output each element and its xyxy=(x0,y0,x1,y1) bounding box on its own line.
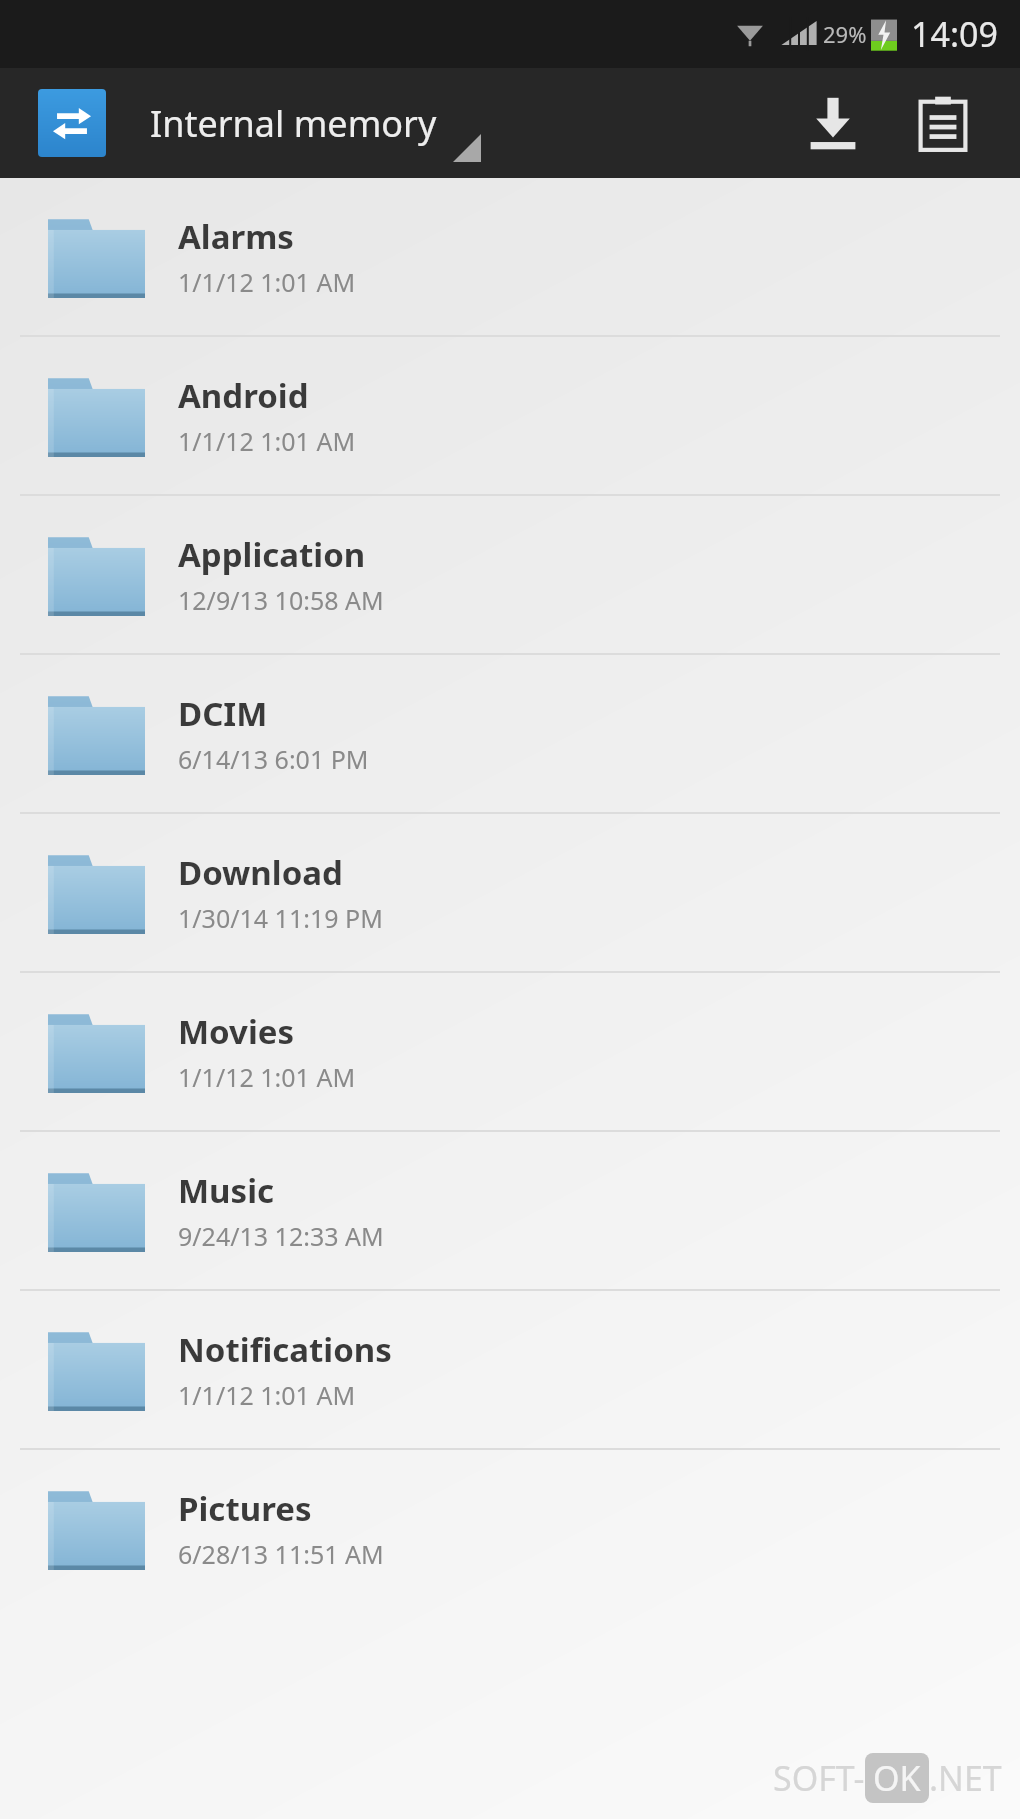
staticText: 14:09 xyxy=(911,11,998,57)
button[interactable]: Clipboard xyxy=(888,68,998,178)
staticText: 9/24/13 12:33 AM xyxy=(178,1219,384,1253)
staticText: 6/28/13 11:51 AM xyxy=(178,1537,384,1571)
button[interactable]: Application xyxy=(0,496,1020,653)
staticText: OK xyxy=(873,1755,921,1801)
button[interactable]: Movies xyxy=(0,973,1020,1130)
staticText: 1/1/12 1:01 AM xyxy=(178,424,356,458)
staticText: DCIM xyxy=(178,691,268,736)
button[interactable]: Download xyxy=(0,814,1020,971)
staticText: 1/30/14 11:19 PM xyxy=(178,901,383,935)
staticText: SOFT- xyxy=(773,1755,865,1801)
staticText: Android xyxy=(178,373,309,418)
staticText: 1/1/12 1:01 AM xyxy=(178,1378,356,1412)
staticText: Movies xyxy=(178,1009,295,1054)
button[interactable]: Android xyxy=(0,337,1020,494)
staticText: 6/14/13 6:01 PM xyxy=(178,742,369,776)
staticText: 1/1/12 1:01 AM xyxy=(178,1060,356,1094)
button[interactable]: DCIM xyxy=(0,655,1020,812)
staticText: 12/9/13 10:58 AM xyxy=(178,583,384,617)
button[interactable]: Pictures xyxy=(0,1450,1020,1607)
staticText: Pictures xyxy=(178,1486,312,1531)
button[interactable]: Transfer xyxy=(0,89,447,157)
staticText: Download xyxy=(178,850,343,895)
staticText: Music xyxy=(178,1168,275,1213)
button[interactable]: Alarms xyxy=(0,178,1020,335)
button[interactable]: Download xyxy=(778,68,888,178)
other: Transfer xyxy=(38,89,106,157)
staticText: Application xyxy=(178,532,366,577)
staticText: .NET xyxy=(929,1755,1002,1801)
staticText: Alarms xyxy=(178,214,294,259)
button[interactable]: Music xyxy=(0,1132,1020,1289)
staticText: 29% xyxy=(823,19,867,49)
staticText: 1/1/12 1:01 AM xyxy=(178,265,356,299)
staticText: Internal memory xyxy=(150,99,437,148)
staticText: Notifications xyxy=(178,1327,392,1372)
button[interactable]: Notifications xyxy=(0,1291,1020,1448)
